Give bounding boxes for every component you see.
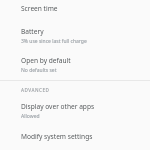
- button[interactable]: Screen time: [0, 0, 150, 21]
- button[interactable]: Battery: [0, 21, 150, 51]
- staticText: Allowed: [21, 113, 40, 120]
- button[interactable]: Open by default: [0, 51, 150, 80]
- staticText: Battery: [21, 27, 44, 36]
- staticText: 3% use since last full charge: [21, 38, 87, 45]
- staticText: Open by default: [21, 56, 71, 65]
- staticText: ADVANCED: [21, 87, 50, 93]
- staticText: Modify system settings: [21, 132, 93, 141]
- staticText: Display over other apps: [21, 102, 95, 111]
- staticText: No defaults set: [21, 67, 57, 74]
- staticText: Screen time: [21, 4, 58, 13]
- button[interactable]: Display over other apps: [0, 97, 150, 126]
- button[interactable]: Modify system settings: [0, 126, 150, 150]
